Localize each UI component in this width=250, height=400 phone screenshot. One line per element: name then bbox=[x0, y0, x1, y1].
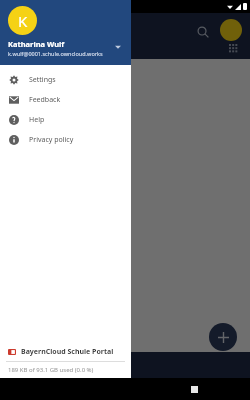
button[interactable]: Recents bbox=[182, 378, 206, 400]
staticText: k.wulf@0001.schule.owncloud.works bbox=[8, 50, 103, 57]
button[interactable]: Search bbox=[192, 21, 214, 43]
staticText: 2:03 bbox=[3, 2, 17, 12]
button[interactable]: Privacy policy bbox=[0, 130, 131, 150]
button[interactable]: Apps bbox=[226, 41, 240, 55]
button[interactable]: Help bbox=[0, 110, 131, 130]
button[interactable]: Files bbox=[0, 352, 84, 378]
staticText: BayernCloud Schule Portal bbox=[21, 347, 114, 357]
button[interactable]: Switch account bbox=[112, 41, 124, 53]
staticText: 189 KB of 93.1 GB used (0.0 %) bbox=[8, 366, 94, 374]
button[interactable]: Tasks bbox=[84, 352, 167, 378]
staticText: Help bbox=[29, 115, 45, 125]
staticText: Settings bbox=[29, 75, 56, 85]
button[interactable]: Account bbox=[220, 19, 242, 41]
button[interactable]: Add bbox=[209, 323, 237, 351]
button[interactable]: BayernCloud Schule Portal bbox=[0, 343, 131, 361]
staticText: Katharina Wulf bbox=[8, 39, 65, 49]
button[interactable]: Feedback bbox=[0, 90, 131, 110]
staticText: K bbox=[18, 11, 28, 31]
button[interactable]: K bbox=[0, 0, 131, 65]
staticText: Privacy policy bbox=[29, 135, 74, 145]
staticText: Feedback bbox=[29, 95, 61, 105]
button[interactable]: Settings bbox=[0, 70, 131, 90]
